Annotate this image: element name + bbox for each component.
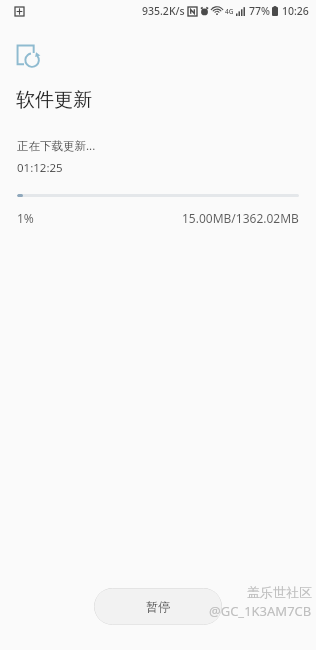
staticText: 软件更新 [16,88,92,112]
staticText: 暂停 [146,599,170,614]
staticText: 15.00MB/1362.02MB [182,210,299,226]
staticText: 01:12:25 [17,160,63,176]
staticText: 4G [225,7,234,16]
staticText: 77% [249,4,270,18]
staticText: 1% [17,210,34,226]
staticText: 正在下载更新... [17,138,96,154]
staticText: 盖乐世社区 [247,584,312,600]
staticText: 935.2K/s [142,4,185,18]
staticText: @GC_1K3AM7CB [209,602,312,620]
staticText: 10:26 [282,4,309,18]
other: Software update [16,44,42,70]
button[interactable]: 暂停 [94,588,222,625]
